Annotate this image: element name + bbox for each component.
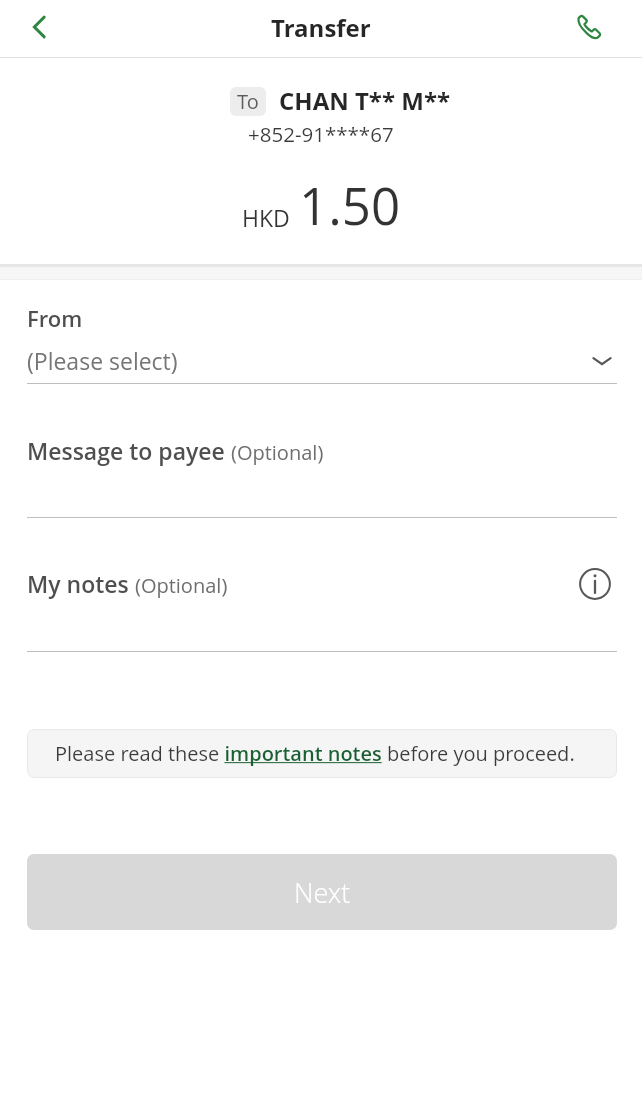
staticText: Message to payee — [27, 435, 225, 466]
staticText: HKD — [242, 202, 290, 233]
staticText: (Optional) — [231, 439, 324, 466]
button[interactable]: Please read these important notes before… — [27, 729, 617, 778]
staticText: Next — [294, 874, 351, 911]
button[interactable]: (Please select) — [27, 345, 617, 376]
staticText: Please read these important notes before… — [55, 740, 575, 767]
staticText: +852-91****67 — [248, 120, 394, 148]
button[interactable]: Back — [14, 2, 64, 52]
staticText: (Optional) — [135, 572, 228, 599]
staticText: (Please select) — [27, 345, 597, 376]
staticText: Transfer — [271, 11, 371, 44]
button[interactable]: Information — [578, 567, 612, 601]
button[interactable]: Call — [564, 2, 614, 52]
staticText: 1.50 — [299, 170, 401, 239]
staticText: CHAN T** M** — [279, 84, 451, 117]
staticText: To — [237, 88, 259, 115]
staticText: From — [27, 303, 83, 333]
staticText: My notes — [27, 568, 129, 599]
